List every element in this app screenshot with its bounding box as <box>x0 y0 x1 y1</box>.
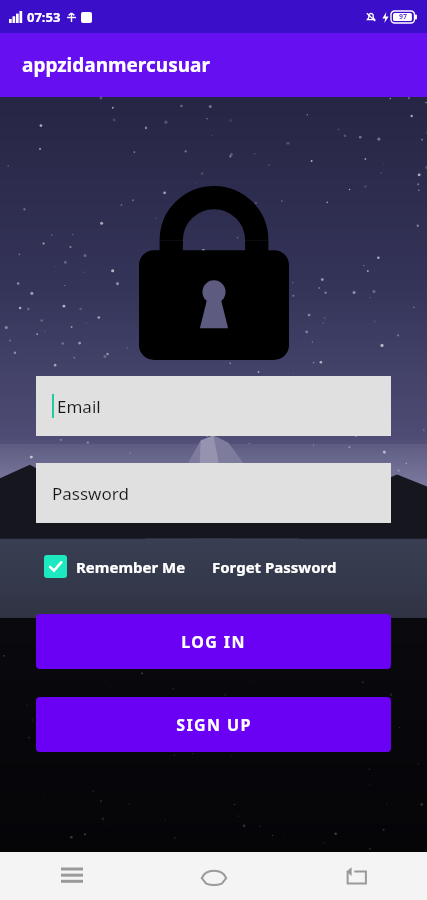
staticText: appzidanmercusuar <box>22 52 210 78</box>
staticText: LOG IN <box>181 631 246 653</box>
staticText: Password <box>52 482 129 505</box>
button[interactable]: Remember Me <box>44 555 186 578</box>
button[interactable]: Home <box>143 852 285 900</box>
button[interactable]: LOG IN <box>36 614 391 669</box>
staticText: 07:53 <box>27 8 61 26</box>
button[interactable]: SIGN UP <box>36 697 391 752</box>
button[interactable]: Back <box>285 852 427 900</box>
button[interactable]: Email <box>36 376 391 436</box>
button[interactable]: Forget Password <box>212 557 337 577</box>
button[interactable]: Password <box>36 463 391 523</box>
button[interactable]: Recent apps <box>0 852 143 900</box>
staticText: SIGN UP <box>176 714 252 736</box>
staticText: Remember Me <box>76 557 186 577</box>
staticText: Email <box>57 395 101 418</box>
staticText: 97 <box>399 12 408 22</box>
